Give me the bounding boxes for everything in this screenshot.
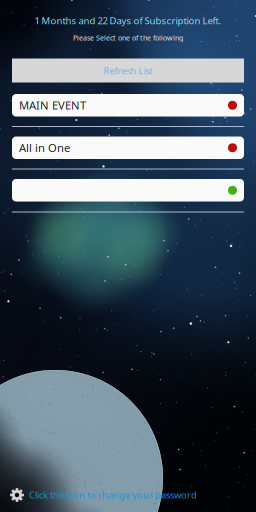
button[interactable]: Click this icon to change your password xyxy=(12,488,244,502)
staticText: Please Select one of the following xyxy=(73,33,183,42)
staticText: MAIN EVENT xyxy=(19,98,86,113)
staticText: 1 Months and 22 Days of Subscription Lef… xyxy=(34,14,221,27)
button[interactable]: All in One xyxy=(12,136,244,159)
button[interactable]: Refresh List xyxy=(12,58,244,82)
button[interactable]: Empty event slot xyxy=(12,179,244,201)
staticText: All in One xyxy=(19,140,70,155)
staticText: Click this icon to change your password xyxy=(29,489,197,501)
staticText: Refresh List xyxy=(103,64,152,77)
button[interactable]: MAIN EVENT xyxy=(12,94,244,116)
